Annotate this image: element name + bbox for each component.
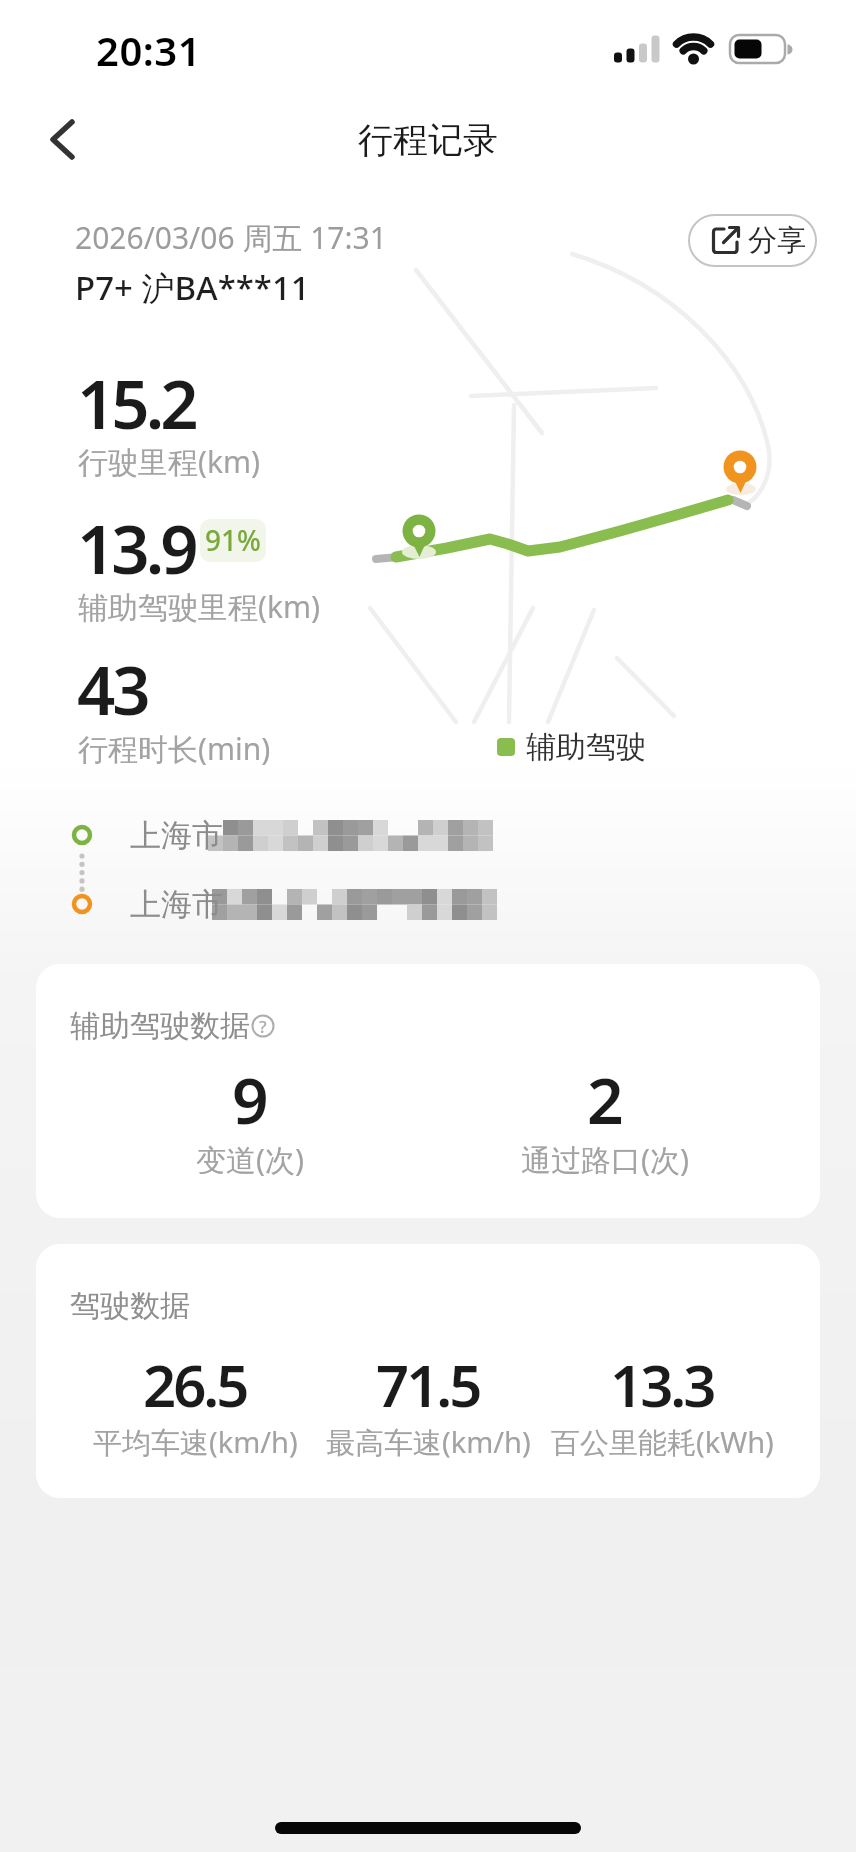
staticText: 辅助驾驶数据: [70, 1007, 250, 1045]
staticText: 13.3: [610, 1345, 714, 1424]
staticText: ?: [259, 1015, 267, 1038]
staticText: 13.9: [77, 502, 195, 593]
staticText: 9: [232, 1056, 269, 1143]
staticText: 43: [77, 643, 148, 734]
staticText: 分享: [748, 222, 806, 259]
staticText: 2026/03/06 周五 17:31: [75, 217, 387, 258]
staticText: 辅助驾驶: [526, 728, 646, 766]
staticText: 91%: [205, 521, 261, 559]
button[interactable]: [688, 214, 817, 267]
staticText: P7+ 沪BA***11: [75, 265, 310, 310]
button[interactable]: [236, 1006, 276, 1046]
staticText: 平均车速(km/h): [93, 1422, 298, 1462]
staticText: 15.2: [77, 357, 195, 448]
staticText: 行驶里程(km): [78, 441, 261, 482]
button[interactable]: [36, 110, 96, 170]
staticText: 上海市: [130, 816, 223, 855]
staticText: 通过路口(次): [521, 1139, 689, 1180]
staticText: 上海市: [130, 885, 223, 924]
staticText: 辅助驾驶里程(km): [78, 586, 321, 627]
staticText: 20:31: [96, 23, 202, 77]
staticText: 26.5: [143, 1345, 247, 1424]
staticText: 变道(次): [196, 1139, 304, 1180]
staticText: 驾驶数据: [70, 1287, 190, 1325]
staticText: 最高车速(km/h): [326, 1422, 531, 1462]
staticText: 2: [587, 1056, 624, 1143]
staticText: 71.5: [376, 1345, 480, 1424]
staticText: 行程记录: [358, 118, 498, 162]
staticText: 百公里能耗(kWh): [551, 1422, 774, 1462]
staticText: 行程时长(min): [78, 728, 271, 769]
